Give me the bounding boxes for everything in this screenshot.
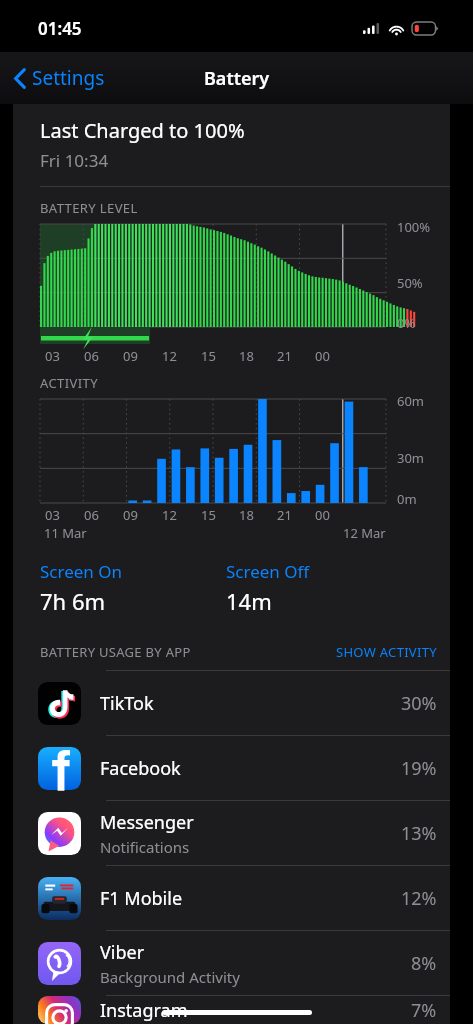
staticText: 21: [277, 347, 292, 365]
button[interactable]: Viber: [13, 931, 450, 995]
staticText: TikTok: [100, 691, 154, 716]
staticText: Facebook: [100, 756, 181, 781]
staticText: 50%: [397, 274, 423, 292]
staticText: Background Activity: [100, 967, 240, 987]
staticText: 12%: [401, 886, 437, 911]
staticText: 12: [162, 347, 177, 365]
staticText: Settings: [32, 65, 105, 91]
staticText: 09: [123, 506, 138, 524]
staticText: 100%: [397, 218, 431, 236]
staticText: 19%: [401, 756, 437, 781]
staticText: Fri 10:34: [40, 149, 109, 172]
staticText: 18: [239, 506, 254, 524]
staticText: 12 Mar: [343, 524, 386, 542]
staticText: 7%: [411, 998, 437, 1023]
staticText: 15: [201, 506, 216, 524]
staticText: Last Charged to 100%: [40, 117, 245, 144]
staticText: 09: [123, 347, 138, 365]
staticText: 01:45: [38, 17, 82, 40]
staticText: Battery: [204, 66, 270, 91]
staticText: BATTERY USAGE BY APP: [40, 643, 191, 661]
button[interactable]: Screen On: [40, 560, 226, 616]
staticText: Screen On: [40, 560, 123, 583]
button[interactable]: Back: [8, 57, 111, 99]
staticText: 14m: [226, 586, 272, 616]
staticText: Viber: [100, 940, 145, 965]
staticText: 0m: [397, 490, 417, 508]
staticText: 18: [239, 347, 254, 365]
staticText: 00: [315, 506, 330, 524]
staticText: 13%: [401, 821, 437, 846]
staticText: 00: [315, 347, 330, 365]
staticText: 8%: [411, 951, 437, 976]
staticText: ACTIVITY: [40, 374, 98, 392]
staticText: 30%: [401, 691, 437, 716]
staticText: SHOW ACTIVITY: [336, 643, 437, 661]
staticText: 03: [45, 347, 60, 365]
button[interactable]: Messenger: [13, 801, 450, 865]
staticText: 12: [162, 506, 177, 524]
staticText: 06: [84, 506, 99, 524]
staticText: 11 Mar: [44, 524, 87, 542]
staticText: 15: [201, 347, 216, 365]
button[interactable]: Facebook: [13, 736, 450, 800]
button[interactable]: Screen Off: [226, 560, 450, 616]
button[interactable]: F1 Mobile: [13, 866, 450, 930]
button[interactable]: TikTok: [13, 671, 450, 735]
button[interactable]: SHOW ACTIVITY: [336, 643, 437, 661]
staticText: 03: [45, 506, 60, 524]
staticText: 60m: [397, 392, 425, 410]
other: Back: [14, 68, 26, 89]
staticText: 30m: [397, 449, 425, 467]
staticText: BATTERY LEVEL: [40, 199, 138, 217]
staticText: Screen Off: [226, 560, 310, 583]
staticText: Messenger: [100, 810, 194, 835]
staticText: 21: [277, 506, 292, 524]
staticText: 06: [84, 347, 99, 365]
staticText: Notifications: [100, 837, 190, 857]
staticText: F1 Mobile: [100, 886, 183, 911]
button[interactable]: Instagram: [13, 996, 450, 1024]
staticText: 0%: [397, 314, 416, 332]
staticText: Instagram: [100, 998, 188, 1023]
staticText: 7h 6m: [40, 586, 106, 616]
